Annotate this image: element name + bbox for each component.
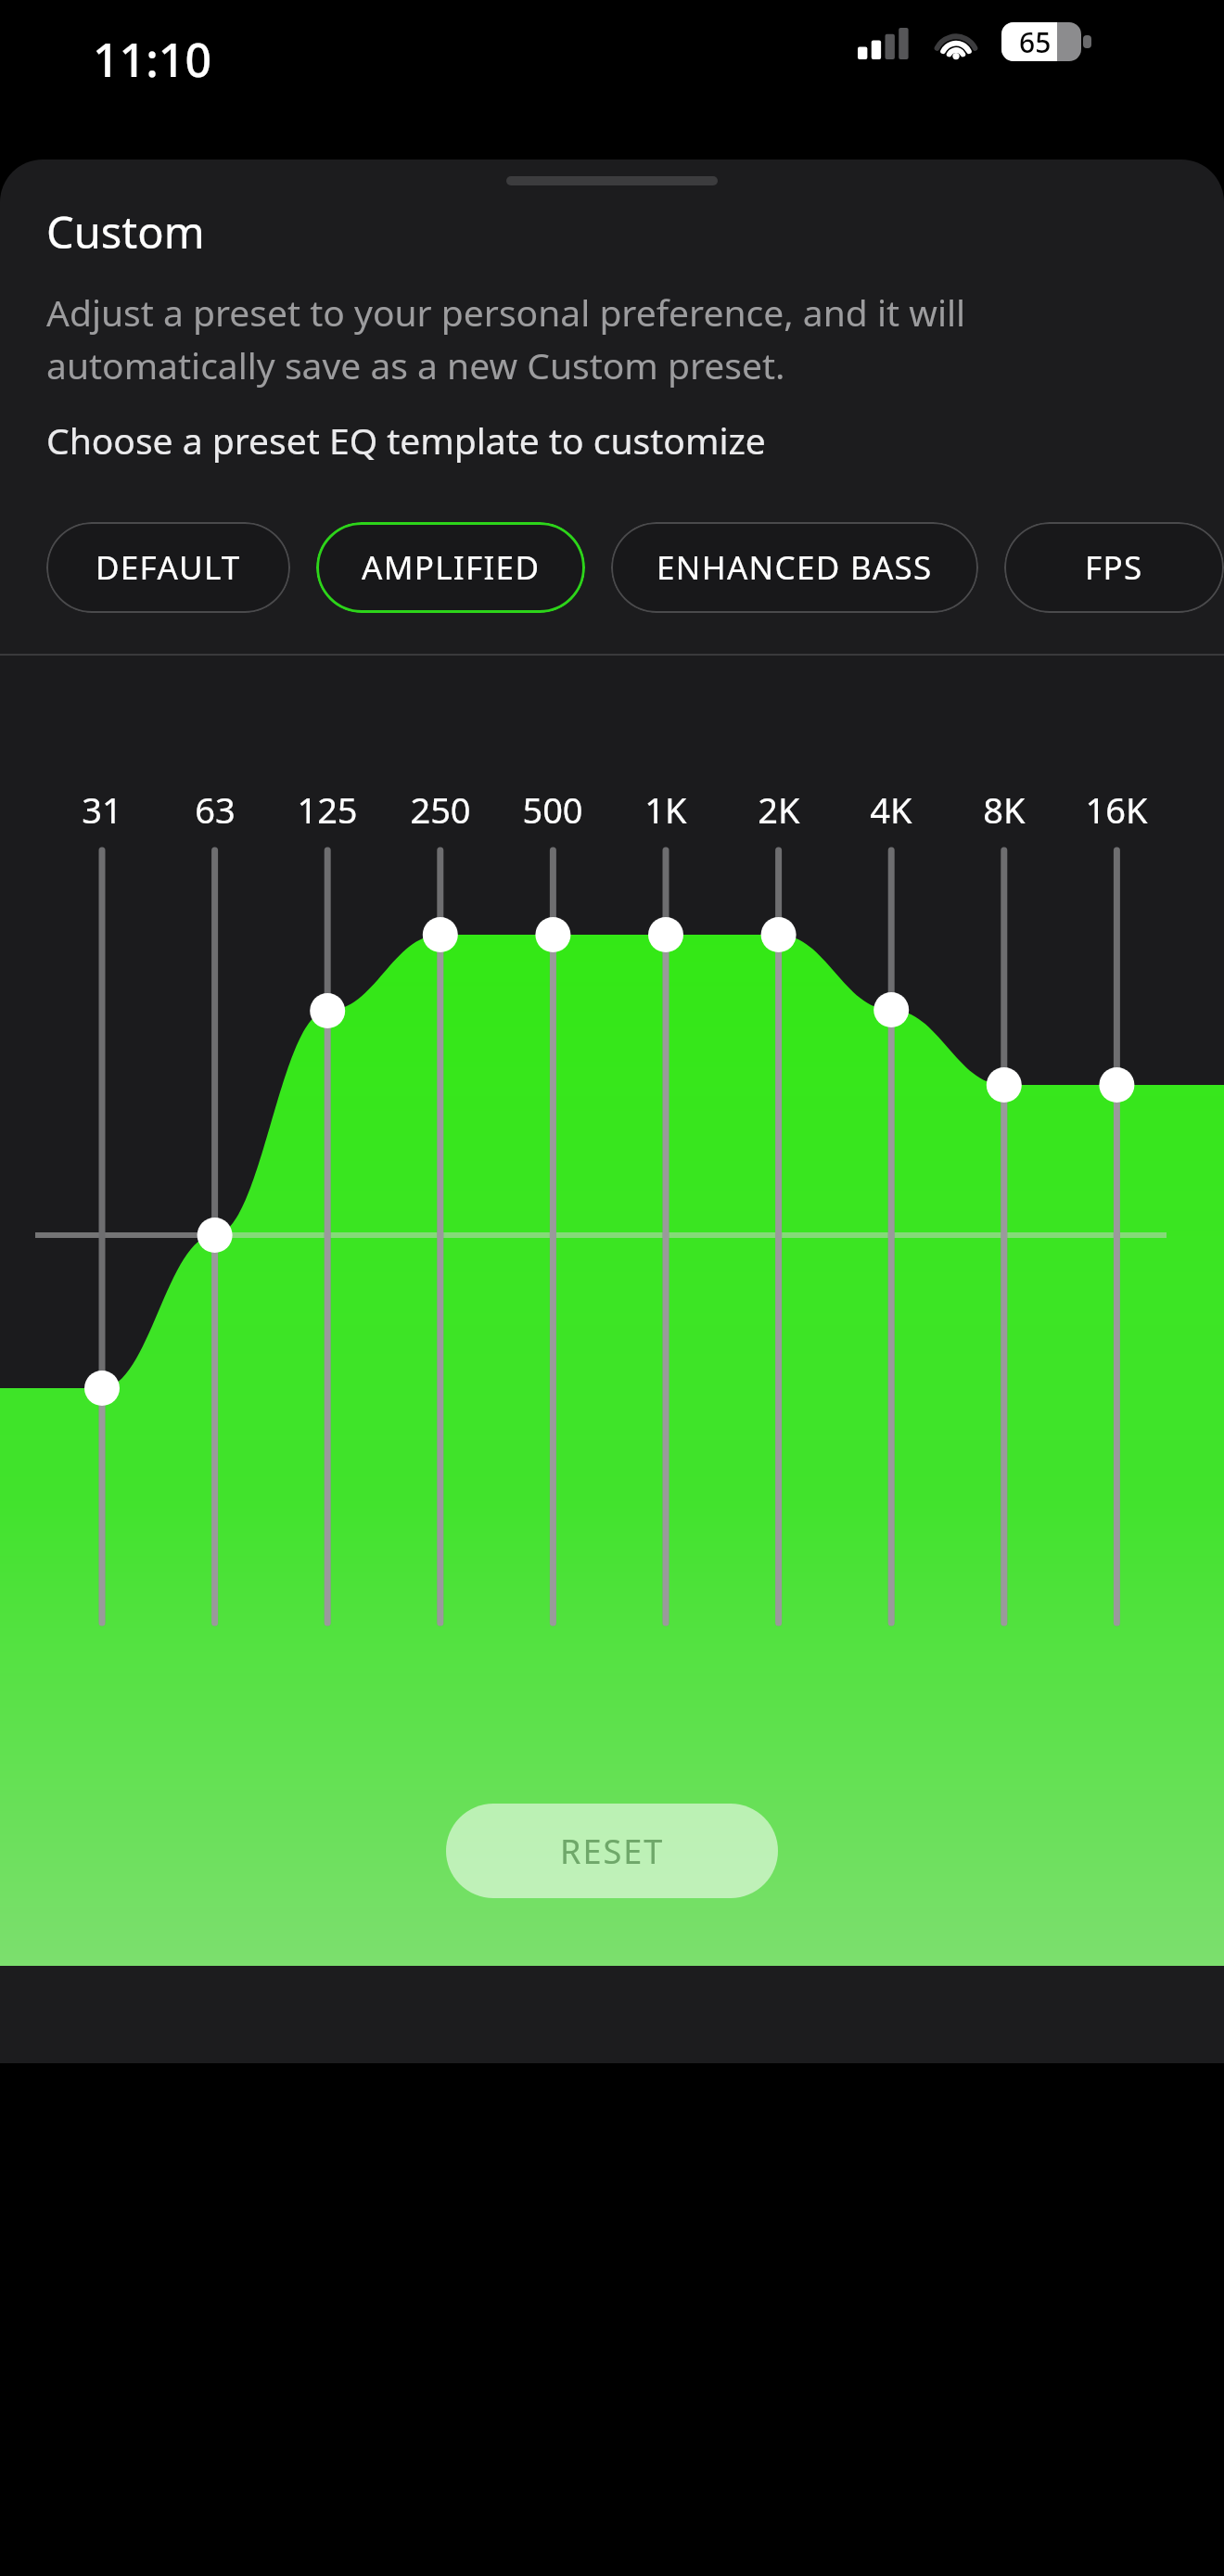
staticText: AMPLIFIED (362, 545, 541, 590)
staticText: 16K (1061, 785, 1172, 834)
staticText: Adjust a preset to your personal prefere… (46, 287, 1183, 389)
staticText: 31 (46, 785, 158, 834)
staticText: 2K (723, 785, 835, 834)
staticText: ENHANCED BASS (657, 545, 933, 590)
staticText: 1K (610, 785, 721, 834)
staticText: Choose a preset EQ template to customize (46, 415, 766, 465)
staticText: FPS (1085, 545, 1143, 590)
other: Battery 65 percent (1001, 22, 1081, 61)
staticText: 4K (835, 785, 947, 834)
staticText: RESET (560, 1829, 665, 1874)
staticText: 125 (272, 785, 383, 834)
button[interactable]: DEFAULT (46, 522, 290, 613)
staticText: 11:10 (93, 28, 211, 91)
staticText: 500 (497, 785, 608, 834)
staticText: Custom (46, 202, 205, 261)
other: Wi-Fi (935, 28, 977, 59)
staticText: DEFAULT (96, 545, 241, 590)
button[interactable]: RESET (446, 1804, 778, 1898)
other: Cellular signal (858, 28, 908, 59)
button[interactable]: ENHANCED BASS (611, 522, 978, 613)
button[interactable]: FPS (1004, 522, 1224, 613)
staticText: 63 (159, 785, 271, 834)
staticText: 8K (949, 785, 1060, 834)
staticText: 250 (385, 785, 496, 834)
button[interactable]: AMPLIFIED (316, 522, 585, 613)
staticText: 65 (1019, 23, 1052, 61)
